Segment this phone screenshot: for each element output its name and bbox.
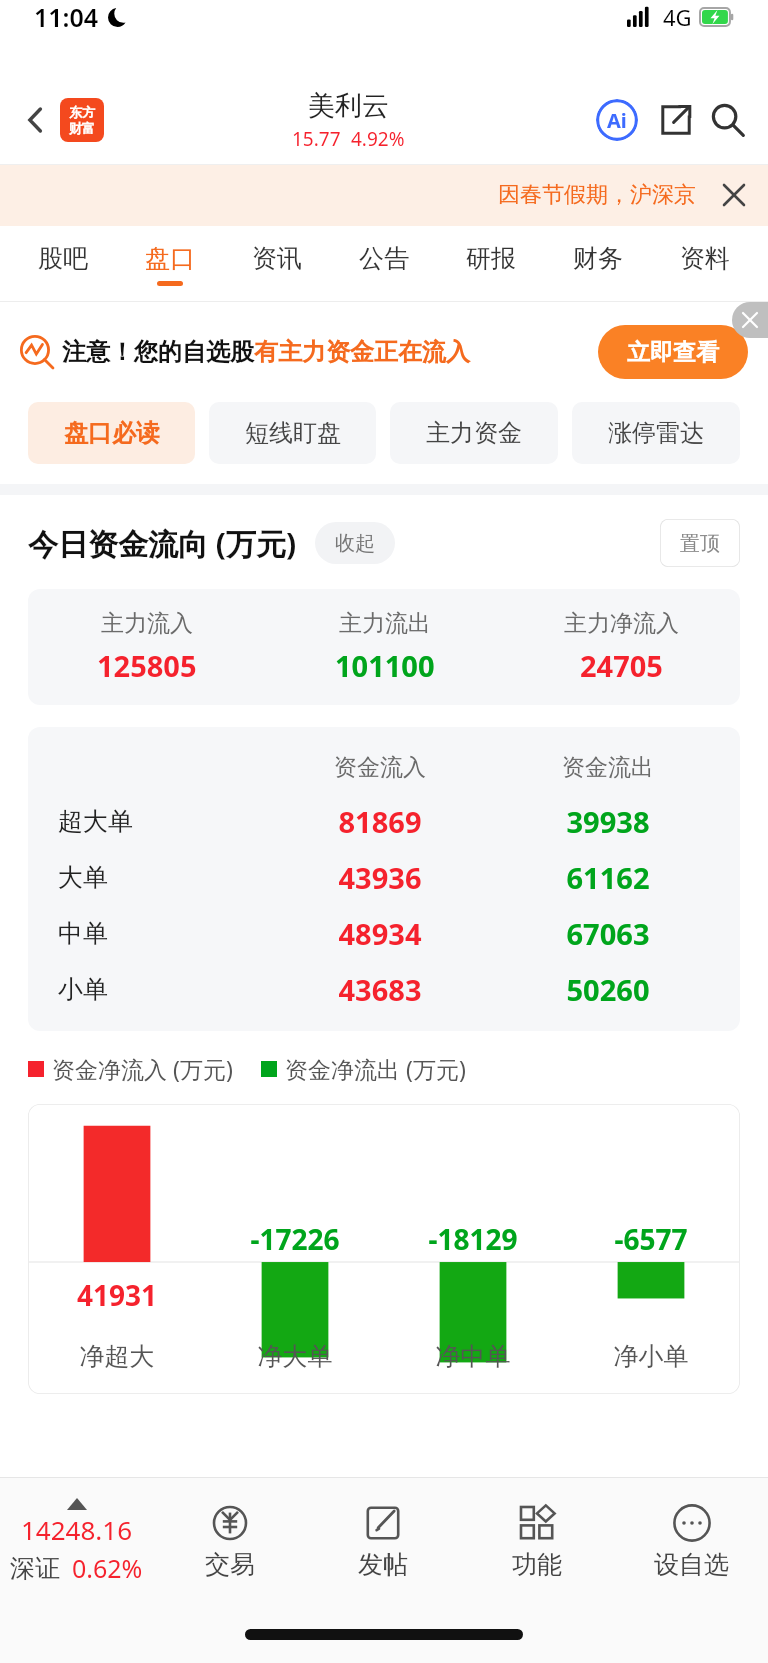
- staticText: 125805: [97, 646, 197, 685]
- staticText: 24705: [580, 646, 663, 685]
- button[interactable]: 交易: [153, 1477, 306, 1605]
- staticText: 主力流入: [101, 609, 193, 638]
- staticText: 39938: [494, 802, 722, 841]
- button[interactable]: 公告: [330, 226, 437, 302]
- button[interactable]: 主力资金: [390, 402, 558, 464]
- button[interactable]: 中单: [28, 905, 740, 961]
- staticText: 11:04: [34, 0, 99, 34]
- button[interactable]: AI: [594, 97, 640, 143]
- button[interactable]: East Money: [60, 98, 104, 142]
- staticText: Ai: [607, 107, 627, 134]
- button[interactable]: 超大单: [28, 793, 740, 849]
- staticText: 交易: [205, 1549, 255, 1580]
- staticText: 主力净流入: [564, 609, 679, 638]
- button[interactable]: 盘口必读: [28, 402, 195, 464]
- staticText: 资金流出: [494, 753, 722, 782]
- button[interactable]: 涨停雷达: [572, 402, 740, 464]
- button[interactable]: 资讯: [223, 226, 330, 302]
- staticText: 公告: [359, 243, 409, 274]
- button[interactable]: 财务: [544, 226, 651, 302]
- staticText: 深证: [10, 1553, 60, 1584]
- staticText: 4G: [663, 2, 692, 32]
- staticText: 14248.16: [21, 1512, 133, 1547]
- staticText: 涨停雷达: [608, 418, 704, 448]
- staticText: 50260: [494, 970, 722, 1009]
- staticText: 资金流入: [266, 753, 494, 782]
- button[interactable]: Share: [654, 98, 698, 142]
- staticText: 净大单: [206, 1341, 384, 1372]
- button[interactable]: 立即查看: [598, 325, 748, 379]
- staticText: 资料: [680, 243, 730, 274]
- staticText: 注意！: [62, 337, 134, 367]
- button[interactable]: 资料: [651, 226, 758, 302]
- button[interactable]: 设自选: [614, 1477, 768, 1605]
- staticText: 61162: [494, 858, 722, 897]
- staticText: 资金净流入 (万元): [52, 1053, 233, 1084]
- button[interactable]: 因春节假期，沪深京: [0, 164, 768, 226]
- staticText: 发帖: [358, 1549, 408, 1580]
- staticText: 研报: [466, 243, 516, 274]
- staticText: 67063: [494, 914, 722, 953]
- button[interactable]: Search: [704, 96, 752, 144]
- staticText: 立即查看: [627, 338, 719, 367]
- staticText: 功能: [512, 1549, 562, 1580]
- button[interactable]: 14248.16: [0, 1477, 153, 1605]
- button[interactable]: 置顶: [660, 519, 740, 567]
- staticText: 小单: [58, 974, 108, 1005]
- staticText: 15.77: [292, 126, 341, 152]
- staticText: 43683: [266, 970, 494, 1009]
- staticText: 东方: [69, 104, 95, 120]
- staticText: 0.62%: [72, 1551, 143, 1585]
- staticText: 4.92%: [351, 126, 405, 152]
- button[interactable]: 大单: [28, 849, 740, 905]
- staticText: 设自选: [654, 1549, 729, 1580]
- button[interactable]: Back: [16, 100, 56, 140]
- staticText: 资讯: [252, 243, 302, 274]
- staticText: -18129: [384, 1220, 562, 1258]
- staticText: 41931: [28, 1276, 206, 1314]
- staticText: 美利云: [308, 89, 389, 123]
- staticText: -17226: [206, 1220, 384, 1258]
- staticText: 主力资金: [426, 418, 522, 448]
- staticText: 财富: [69, 120, 95, 136]
- staticText: -6577: [562, 1220, 740, 1258]
- staticText: 盘口必读: [64, 418, 160, 448]
- staticText: 因春节假期，沪深京: [498, 181, 696, 209]
- staticText: 今日资金流向 (万元): [28, 523, 297, 564]
- button[interactable]: 股吧: [10, 226, 116, 302]
- staticText: 收起: [335, 531, 375, 556]
- staticText: 主力流出: [339, 609, 431, 638]
- staticText: 净小单: [562, 1341, 740, 1372]
- button[interactable]: 收起: [315, 522, 395, 564]
- staticText: 净超大: [28, 1341, 206, 1372]
- button[interactable]: 小单: [28, 961, 740, 1017]
- staticText: 股吧: [38, 243, 88, 274]
- staticText: 盘口: [145, 243, 195, 274]
- staticText: 短线盯盘: [245, 418, 341, 448]
- button[interactable]: Close notice: [712, 173, 756, 217]
- staticText: 净中单: [384, 1341, 562, 1372]
- staticText: 您的自选股: [134, 337, 254, 367]
- button[interactable]: 盘口: [116, 226, 223, 302]
- staticText: 81869: [266, 802, 494, 841]
- staticText: 中单: [58, 918, 108, 949]
- button[interactable]: 研报: [437, 226, 544, 302]
- staticText: 置顶: [680, 531, 720, 556]
- staticText: 101100: [335, 646, 435, 685]
- button[interactable]: Close ad: [732, 302, 768, 338]
- staticText: 财务: [573, 243, 623, 274]
- button[interactable]: 发帖: [306, 1477, 460, 1605]
- staticText: 超大单: [58, 806, 133, 837]
- staticText: 大单: [58, 862, 108, 893]
- staticText: 有主力资金正在流入: [254, 337, 470, 367]
- staticText: 48934: [266, 914, 494, 953]
- button[interactable]: 短线盯盘: [209, 402, 376, 464]
- staticText: 43936: [266, 858, 494, 897]
- button[interactable]: 功能: [460, 1477, 614, 1605]
- staticText: 资金净流出 (万元): [285, 1053, 466, 1084]
